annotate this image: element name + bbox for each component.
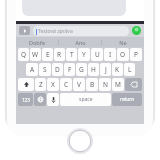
staticText: H [91,65,96,74]
button[interactable]: Change keyboard [34,93,46,106]
button[interactable]: D [52,63,63,76]
button[interactable]: L [124,63,135,76]
staticText: O [120,50,126,59]
button[interactable]: W [30,48,41,61]
button[interactable]: Shift [18,78,34,91]
staticText: W [32,50,39,59]
button[interactable]: X [47,78,59,91]
staticText: T [70,50,74,59]
staticText: I [109,50,112,59]
button[interactable]: Ano [59,37,101,47]
button[interactable]: Backspace [125,78,142,91]
button[interactable]: O [117,48,129,61]
staticText: Z [39,80,43,89]
staticText: Y [82,50,86,59]
staticText: Textová zpráva [38,28,73,35]
staticText: return [120,96,135,103]
staticText: C [64,80,69,89]
staticText: D [55,65,60,74]
staticText: E [46,50,50,59]
button[interactable]: A [26,63,38,76]
button[interactable]: K [112,63,123,76]
button[interactable]: I [104,48,116,61]
button[interactable]: N [99,78,111,91]
button[interactable]: J [100,63,111,76]
button[interactable]: P [130,48,142,61]
button[interactable]: Dobře [16,37,58,47]
button[interactable]: B [86,78,98,91]
staticText: A [30,65,35,74]
button[interactable]: F [64,63,75,76]
staticText: F [68,65,72,74]
button[interactable]: G [76,63,87,76]
button[interactable]: Dictate [47,93,59,106]
button[interactable]: Q [18,48,29,61]
staticText: 123 [22,97,30,103]
staticText: Ne [119,39,127,46]
staticText: N [103,80,108,89]
button[interactable]: 123 [18,93,33,106]
staticText: P [134,50,138,59]
button[interactable]: Y [78,48,90,61]
button[interactable]: T [66,48,77,61]
staticText: M [115,80,121,89]
button[interactable]: C [60,78,72,91]
button[interactable]: M [112,78,124,91]
staticText: X [51,80,55,89]
staticText: S [43,65,47,74]
staticText: K [115,65,120,74]
button[interactable]: Apps [19,26,30,35]
staticText: G [79,65,84,74]
staticText: B [90,80,95,89]
button[interactable]: H [88,63,99,76]
button[interactable]: Home [67,128,93,154]
staticText: V [77,80,81,89]
staticText: Q [21,50,27,59]
staticText: space [79,96,93,103]
staticText: Dobře [29,39,45,46]
button[interactable]: R [54,48,65,61]
button[interactable]: Z [35,78,46,91]
button[interactable]: space [60,93,111,106]
button[interactable]: Send [132,26,141,35]
button[interactable]: Ne [102,37,144,47]
staticText: R [57,50,62,59]
button[interactable]: V [73,78,85,91]
button[interactable]: return [112,93,142,106]
staticText: U [95,50,100,59]
button[interactable]: Textová zpráva [36,26,129,36]
button[interactable]: U [91,48,103,61]
staticText: L [128,65,132,74]
button[interactable]: S [39,63,51,76]
button[interactable]: E [42,48,53,61]
staticText: J [105,65,107,74]
staticText: Ano [75,39,86,46]
